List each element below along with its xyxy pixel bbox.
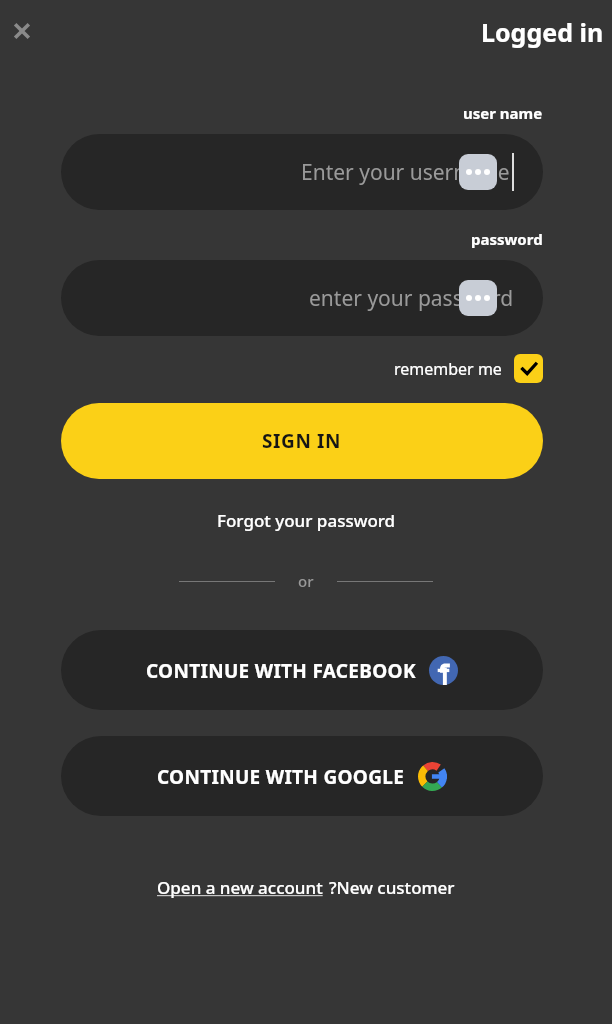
button[interactable]: CONTINUE WITH GOOGLE (61, 736, 543, 816)
button[interactable]: Open a new account (157, 876, 323, 899)
button[interactable]: SIGN IN (61, 403, 543, 479)
staticText: ?New customer (329, 876, 455, 899)
staticText: user name (463, 103, 543, 123)
button[interactable]: Forgot your password (207, 505, 406, 536)
staticText: remember me (394, 358, 502, 380)
button[interactable]: Close (2, 11, 42, 51)
staticText: password (471, 229, 543, 249)
button[interactable]: remember me (394, 354, 543, 383)
button[interactable]: enter your password (61, 260, 543, 336)
staticText: CONTINUE WITH FACEBOOK (146, 658, 416, 684)
staticText: Open a new account (157, 876, 323, 899)
staticText: CONTINUE WITH GOOGLE (157, 764, 405, 790)
button[interactable]: Enter your username (61, 134, 543, 210)
staticText: Enter your username (301, 158, 510, 187)
staticText: or (298, 571, 314, 591)
button[interactable]: CONTINUE WITH FACEBOOK (61, 630, 543, 710)
staticText: enter your password (309, 284, 514, 313)
staticText: Forgot your password (217, 509, 396, 532)
staticText: Logged in (481, 15, 604, 49)
staticText: SIGN IN (262, 428, 342, 454)
